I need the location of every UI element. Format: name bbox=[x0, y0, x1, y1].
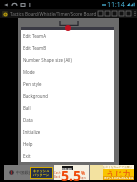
button[interactable]: Exit bbox=[21, 150, 114, 162]
button[interactable]: Recent apps bbox=[19, 0, 28, 9]
button[interactable]: Edit TeamA bbox=[21, 30, 114, 42]
button[interactable]: Mode bbox=[21, 66, 114, 78]
staticText: Back bbox=[54, 175, 61, 179]
staticText: 11:14 bbox=[107, 0, 125, 9]
button[interactable]: Advertisement bbox=[4, 165, 134, 180]
staticText: Mode bbox=[23, 69, 35, 75]
staticText: Data bbox=[23, 117, 33, 123]
button[interactable]: Flip bbox=[111, 9, 118, 18]
button[interactable]: Home bbox=[10, 0, 19, 9]
staticText: 還元 bbox=[81, 176, 87, 179]
staticText: ポイントがどんどんたまる bbox=[104, 177, 134, 180]
staticText: 中国銀行 bbox=[16, 170, 33, 175]
staticText: Tactics Board/Whistle/Timer/Score Board bbox=[10, 11, 97, 17]
staticText: Initialize bbox=[23, 129, 41, 135]
staticText: 年率 最大 bbox=[62, 167, 73, 170]
staticText: バックーン bbox=[33, 173, 50, 177]
button[interactable]: Undo bbox=[97, 9, 104, 18]
staticText: Ball bbox=[23, 105, 31, 111]
staticText: Edit TeamA bbox=[23, 33, 46, 39]
staticText: Cash bbox=[54, 171, 61, 175]
staticText: うじ力 bbox=[106, 169, 131, 179]
staticText: 5.5 bbox=[61, 166, 81, 181]
staticText: Pen style bbox=[23, 81, 42, 87]
button[interactable]: Edit TeamB bbox=[21, 42, 114, 54]
button[interactable]: Initialize bbox=[21, 126, 114, 138]
button[interactable]: Pen style bbox=[21, 78, 114, 90]
staticText: Number Shape size (All) bbox=[23, 57, 72, 63]
staticText: Help bbox=[23, 141, 33, 147]
staticText: Exit bbox=[23, 153, 31, 159]
staticText: Edit TeamB bbox=[23, 45, 47, 51]
button[interactable]: Back bbox=[1, 0, 10, 9]
button[interactable]: Background bbox=[21, 90, 114, 102]
button[interactable]: Redo bbox=[104, 9, 111, 18]
button[interactable]: Help bbox=[21, 138, 114, 150]
button[interactable]: Ball bbox=[21, 102, 114, 114]
button[interactable]: Share bbox=[118, 9, 125, 18]
button[interactable]: More options bbox=[132, 9, 137, 18]
staticText: Background bbox=[23, 93, 48, 99]
button[interactable]: Number Shape size (All) bbox=[21, 54, 114, 66]
staticText: % bbox=[81, 170, 86, 176]
staticText: キャッシュ bbox=[33, 169, 50, 173]
button[interactable]: Timer bbox=[125, 9, 132, 18]
button[interactable]: Data bbox=[21, 114, 114, 126]
staticText: おとくなカードでお買い物 bbox=[103, 165, 134, 169]
